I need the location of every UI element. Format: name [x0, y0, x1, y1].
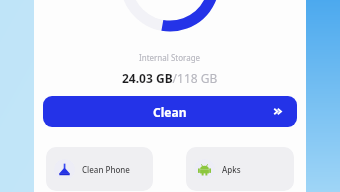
staticText: 24.03 GB/118 GB	[122, 70, 218, 86]
staticText: Clean Phone	[82, 164, 130, 175]
staticText: Apks	[222, 164, 241, 175]
other: Apks	[198, 163, 211, 176]
button[interactable]: Clean	[43, 96, 297, 127]
button[interactable]: Clean Phone	[46, 147, 153, 191]
button[interactable]: Apks	[186, 147, 294, 191]
staticText: Clean	[153, 104, 187, 120]
staticText: Internal Storage	[139, 52, 201, 63]
other: Clean Phone	[58, 163, 71, 176]
